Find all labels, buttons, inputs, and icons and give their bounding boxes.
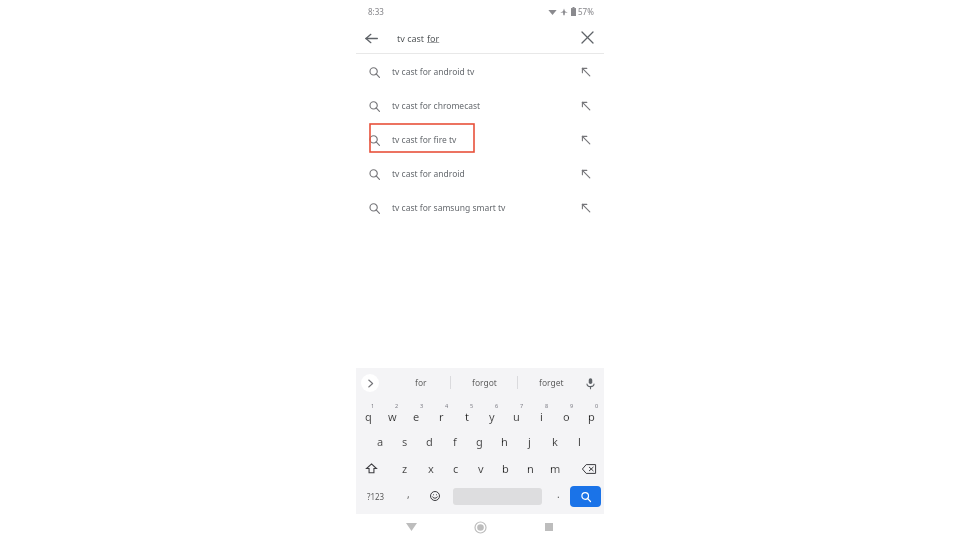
staticText: 6 bbox=[495, 402, 499, 409]
staticText: x bbox=[428, 461, 434, 476]
staticText: b bbox=[502, 461, 509, 476]
button[interactable]: b bbox=[493, 455, 518, 482]
button[interactable]: a bbox=[368, 428, 392, 455]
staticText: o bbox=[563, 409, 570, 424]
staticText: c bbox=[453, 461, 459, 476]
staticText: 2 bbox=[395, 402, 399, 409]
button[interactable]: forget bbox=[518, 368, 584, 397]
staticText: 4 bbox=[445, 402, 449, 409]
staticText: p bbox=[588, 409, 595, 424]
staticText: forgot bbox=[472, 377, 497, 389]
button[interactable]: f bbox=[442, 428, 467, 455]
button[interactable]: Emoji bbox=[421, 482, 449, 510]
staticText: 8:33 bbox=[368, 6, 384, 17]
staticText: m bbox=[550, 461, 561, 476]
staticText: tv cast bbox=[397, 32, 427, 44]
staticText: r bbox=[439, 409, 444, 424]
button[interactable]: 3 bbox=[404, 401, 429, 428]
button[interactable]: Backspace bbox=[574, 455, 604, 482]
button[interactable]: j bbox=[517, 428, 542, 455]
staticText: l bbox=[578, 434, 581, 449]
staticText: h bbox=[501, 434, 508, 449]
button[interactable]: forgot bbox=[451, 368, 517, 397]
staticText: q bbox=[365, 409, 372, 424]
button[interactable]: l bbox=[567, 428, 592, 455]
staticText: s bbox=[402, 434, 408, 449]
staticText: for bbox=[415, 377, 427, 389]
button[interactable]: 7 bbox=[504, 401, 529, 428]
staticText: for bbox=[427, 32, 440, 44]
button[interactable]: Expand suggestions bbox=[361, 374, 379, 392]
button[interactable]: g bbox=[467, 428, 492, 455]
button[interactable]: tv cast for samsung smart tv bbox=[356, 191, 604, 225]
staticText: d bbox=[426, 434, 433, 449]
button[interactable]: 1 bbox=[356, 401, 380, 428]
staticText: y bbox=[489, 409, 495, 424]
staticText: z bbox=[402, 461, 408, 476]
staticText: . bbox=[557, 487, 560, 501]
staticText: i bbox=[540, 409, 543, 424]
staticText: , bbox=[407, 487, 410, 501]
button[interactable]: Back bbox=[356, 23, 386, 53]
button[interactable]: Search bbox=[570, 486, 601, 507]
button[interactable]: v bbox=[468, 455, 493, 482]
staticText: u bbox=[513, 409, 520, 424]
button[interactable]: Shift bbox=[356, 455, 386, 482]
staticText: 8 bbox=[545, 402, 549, 409]
staticText: g bbox=[476, 434, 483, 449]
staticText: a bbox=[377, 434, 384, 449]
button[interactable]: ?123 bbox=[356, 482, 396, 510]
button[interactable]: 9 bbox=[554, 401, 579, 428]
staticText: tv cast for chromecast bbox=[392, 100, 568, 112]
staticText: tv cast for android tv bbox=[392, 66, 568, 78]
button[interactable]: 0 bbox=[579, 401, 604, 428]
staticText: k bbox=[552, 434, 558, 449]
button[interactable]: tv cast for chromecast bbox=[356, 89, 604, 123]
staticText: e bbox=[413, 409, 420, 424]
button[interactable]: 2 bbox=[380, 401, 404, 428]
staticText: f bbox=[453, 434, 457, 449]
button[interactable]: k bbox=[542, 428, 567, 455]
button[interactable]: Back bbox=[397, 514, 425, 540]
staticText: j bbox=[528, 434, 531, 449]
staticText: 5 bbox=[470, 402, 474, 409]
button[interactable]: d bbox=[417, 428, 442, 455]
staticText: tv cast for fire tv bbox=[392, 134, 568, 146]
staticText: forget bbox=[539, 377, 564, 389]
button[interactable]: h bbox=[492, 428, 517, 455]
staticText: 57% bbox=[578, 6, 594, 17]
button[interactable]: c bbox=[443, 455, 468, 482]
button[interactable]: s bbox=[392, 428, 417, 455]
button[interactable]: 8 bbox=[529, 401, 554, 428]
staticText: 0 bbox=[595, 402, 599, 409]
staticText: v bbox=[478, 461, 484, 476]
staticText: 1 bbox=[371, 402, 375, 409]
button[interactable]: . bbox=[546, 482, 570, 510]
button[interactable]: x bbox=[418, 455, 443, 482]
staticText: n bbox=[527, 461, 534, 476]
button[interactable]: 5 bbox=[454, 401, 479, 428]
button[interactable]: 4 bbox=[429, 401, 454, 428]
button[interactable]: , bbox=[396, 482, 421, 510]
button[interactable]: Recent apps bbox=[535, 514, 563, 540]
button[interactable]: for bbox=[392, 368, 450, 397]
button[interactable]: n bbox=[518, 455, 543, 482]
staticText: ?123 bbox=[367, 491, 385, 502]
staticText: tv cast for android bbox=[392, 168, 568, 180]
button[interactable]: tv cast for android tv bbox=[356, 55, 604, 89]
staticText: t bbox=[465, 409, 469, 424]
button[interactable]: 6 bbox=[479, 401, 504, 428]
button[interactable]: z bbox=[392, 455, 418, 482]
button[interactable]: Voice input bbox=[579, 372, 601, 394]
button[interactable]: tv cast for android bbox=[356, 157, 604, 191]
button[interactable]: m bbox=[543, 455, 568, 482]
button[interactable]: Home bbox=[466, 514, 494, 540]
staticText: 3 bbox=[420, 402, 424, 409]
staticText: 7 bbox=[520, 402, 524, 409]
button[interactable]: tv cast for fire tv bbox=[356, 123, 604, 157]
button[interactable]: Clear bbox=[570, 22, 604, 53]
staticText: tv cast for samsung smart tv bbox=[392, 202, 568, 214]
staticText: w bbox=[388, 409, 397, 424]
staticText: 9 bbox=[570, 402, 574, 409]
